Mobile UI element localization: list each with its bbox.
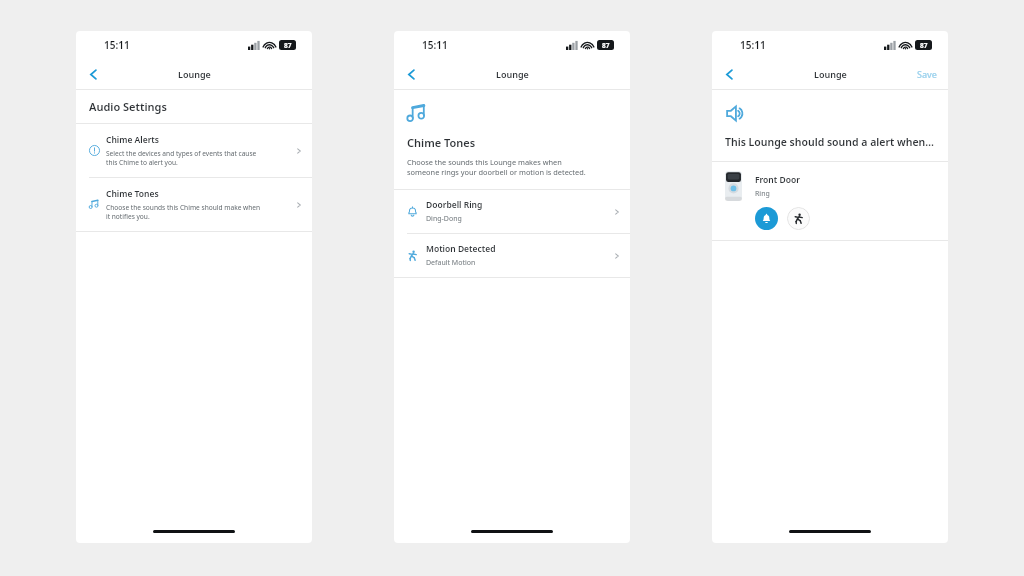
button[interactable]: Chime Tones: [76, 178, 312, 231]
staticText: Chime Tones: [106, 188, 159, 200]
staticText: Choose the sounds this Chime should make…: [106, 203, 261, 221]
staticText: 15:11: [422, 38, 448, 52]
staticText: Doorbell Ring: [426, 199, 483, 211]
staticText: Save: [917, 68, 938, 80]
staticText: Select the devices and types of events t…: [106, 149, 257, 167]
button[interactable]: Doorbell ring alert: [755, 207, 778, 230]
staticText: Lounge: [814, 68, 847, 80]
staticText: Ring: [755, 189, 770, 199]
staticText: Front Door: [755, 174, 800, 186]
staticText: Audio Settings: [89, 99, 167, 114]
staticText: 15:11: [740, 38, 766, 52]
button[interactable]: Motion Detected: [394, 234, 630, 277]
staticText: 87: [920, 41, 928, 50]
staticText: Motion Detected: [426, 243, 496, 255]
button[interactable]: Doorbell Ring: [394, 190, 630, 233]
button[interactable]: Chime Alerts: [76, 124, 312, 177]
staticText: Lounge: [178, 68, 211, 80]
staticText: Default Motion: [426, 258, 476, 268]
button[interactable]: Motion alert: [787, 207, 810, 230]
button[interactable]: Back: [716, 61, 742, 87]
staticText: This Lounge should sound a alert when…: [725, 135, 934, 149]
staticText: Chime Tones: [407, 135, 476, 150]
staticText: 15:11: [104, 38, 130, 52]
staticText: Ding-Dong: [426, 214, 462, 224]
button[interactable]: Back: [80, 61, 106, 87]
staticText: Choose the sounds this Lounge makes when…: [407, 157, 586, 177]
staticText: Chime Alerts: [106, 134, 160, 146]
button[interactable]: Back: [398, 61, 424, 87]
staticText: Lounge: [496, 68, 529, 80]
staticText: 87: [284, 41, 292, 50]
button[interactable]: Save: [917, 68, 938, 80]
staticText: 87: [602, 41, 610, 50]
